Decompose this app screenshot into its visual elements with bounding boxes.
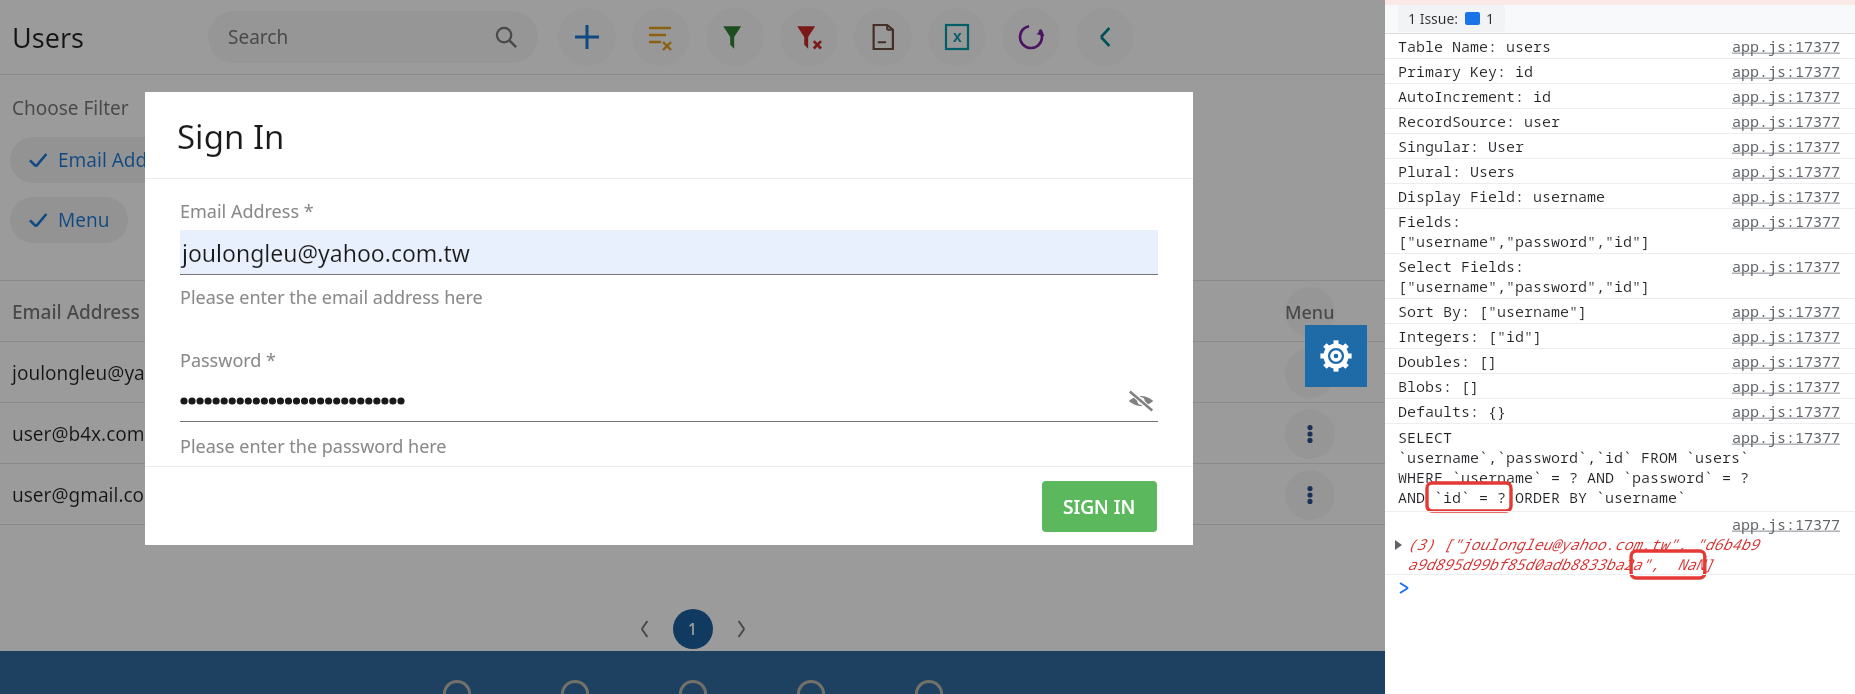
staticText: ["username","password","id"] (1398, 231, 1651, 251)
staticText: Table Name: users (1398, 36, 1552, 56)
button[interactable]: Social link (909, 676, 949, 694)
button[interactable]: app.js:17377 (1732, 401, 1841, 421)
button[interactable]: Refresh (1002, 8, 1060, 66)
button[interactable]: Social link (673, 676, 713, 694)
button[interactable]: Export PDF (854, 8, 912, 66)
staticText: Select Fields: (1398, 256, 1525, 276)
staticText: `username`,`password`,`id` FROM `users` (1398, 447, 1750, 467)
staticText: Blobs: [] (1398, 376, 1480, 396)
staticText: Please enter the password here (180, 434, 447, 459)
button[interactable]: Search (208, 11, 538, 63)
button[interactable]: Previous page (625, 609, 665, 649)
staticText: Menu (58, 207, 110, 233)
staticText: Display Field: username (1398, 186, 1606, 206)
staticText: Menu (1285, 300, 1335, 325)
button[interactable]: 1 (673, 609, 713, 649)
staticText: 1 (688, 618, 698, 640)
button[interactable]: Row menu (1285, 348, 1335, 398)
staticText: a9d895d99bf85d0adb8833ba2a", NaN] (1407, 554, 1714, 574)
staticText: 1 (1486, 9, 1495, 28)
staticText: 1 Issue: (1408, 9, 1459, 28)
button[interactable]: 1 Issue: (1398, 5, 1505, 32)
button[interactable]: user@b4x.com (0, 403, 1385, 464)
staticText: AutoIncrement: id (1398, 86, 1552, 106)
staticText: SELECT (1398, 427, 1453, 447)
staticText: Sign In (177, 114, 285, 159)
button[interactable]: Next page (721, 609, 761, 649)
button[interactable]: app.js:17377 (1732, 256, 1841, 276)
button[interactable]: Email Address * (0, 281, 1385, 342)
button[interactable]: app.js:17377 (1732, 161, 1841, 181)
staticText: joulongleu@yahoo.com (12, 360, 312, 386)
staticText: Defaults: {} (1398, 401, 1507, 421)
staticText: Sort By: ["username"] (1398, 301, 1588, 321)
staticText: Email Address (58, 147, 184, 173)
button[interactable]: Filter (706, 8, 764, 66)
staticText: Integers: ["id"] (1398, 326, 1543, 346)
staticText: Doubles: [] (1398, 351, 1498, 371)
staticText: Email Address * (180, 199, 314, 224)
button[interactable]: app.js:17377 (1732, 61, 1841, 81)
button[interactable]: Menu (10, 197, 128, 243)
button[interactable]: Add (558, 8, 616, 66)
staticText: Password * (180, 348, 277, 373)
staticText: Search (228, 24, 289, 50)
button[interactable]: Row menu (1285, 409, 1335, 459)
button[interactable]: app.js:17377 (1732, 111, 1841, 131)
button[interactable]: Show password (1124, 384, 1158, 418)
staticText: Please enter the email address here (180, 285, 483, 310)
button[interactable]: app.js:17377 (1732, 36, 1841, 56)
button[interactable]: Clear filter (780, 8, 838, 66)
staticText: user@gmail.com (12, 482, 312, 508)
button[interactable]: Export Excel (928, 8, 986, 66)
staticText: user@b4x.com (12, 421, 312, 447)
staticText: Primary Key: id (1398, 61, 1534, 81)
staticText: Email Address * (12, 299, 312, 325)
button[interactable]: Back (1076, 8, 1134, 66)
button[interactable]: joulongleu@yahoo.com (0, 342, 1385, 403)
staticText: Singular: User (1398, 136, 1525, 156)
staticText: ["username","password","id"] (1398, 276, 1651, 296)
staticText: X (953, 28, 962, 46)
staticText: Plural: Users (1398, 161, 1516, 181)
button[interactable]: app.js:17377 (1732, 427, 1841, 447)
button[interactable]: app.js:17377 (1732, 211, 1841, 231)
button[interactable]: app.js:17377 (1732, 514, 1841, 534)
staticText: (3) ["joulongleu@yahoo.com.tw", "d6b4b9 (1407, 534, 1759, 554)
button[interactable]: SIGN IN (1042, 481, 1157, 532)
button[interactable]: user@gmail.com (0, 464, 1385, 525)
button[interactable]: app.js:17377 (1732, 136, 1841, 156)
button[interactable]: Row menu (1285, 470, 1335, 520)
staticText: WHERE `username` = ? AND `password` = ? (1398, 467, 1750, 487)
button[interactable]: Email Address (10, 137, 202, 183)
button[interactable]: joulongleu@yahoo.com.tw (180, 230, 1158, 274)
button[interactable]: Row menu (1285, 287, 1335, 337)
button[interactable]: app.js:17377 (1732, 86, 1841, 106)
button[interactable]: Social link (437, 676, 477, 694)
button[interactable]: Social link (555, 676, 595, 694)
button[interactable]: Social link (791, 676, 831, 694)
staticText: joulongleu@yahoo.com.tw (182, 237, 470, 268)
button[interactable]: Show password (180, 381, 1158, 421)
button[interactable]: app.js:17377 (1732, 376, 1841, 396)
staticText: RecordSource: user (1398, 111, 1561, 131)
button[interactable]: Clear sort (632, 8, 690, 66)
button[interactable]: app.js:17377 (1732, 301, 1841, 321)
button[interactable]: app.js:17377 (1732, 186, 1841, 206)
button[interactable]: Settings (1305, 325, 1367, 387)
staticText: Fields: (1398, 211, 1462, 231)
staticText: Choose Filter (12, 95, 129, 121)
staticText: Users (12, 19, 84, 56)
staticText: SIGN IN (1063, 494, 1136, 520)
staticText: AND `id` = ? ORDER BY `username` (1398, 487, 1687, 507)
button[interactable]: app.js:17377 (1732, 326, 1841, 346)
button[interactable]: app.js:17377 (1732, 351, 1841, 371)
